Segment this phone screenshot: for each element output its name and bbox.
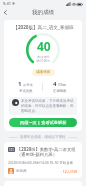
staticText: 成绩优良 xyxy=(36,70,51,75)
button[interactable]: 返回 xyxy=(0,7,11,18)
staticText: 40 xyxy=(37,38,51,54)
staticText: · 12人已报 xyxy=(61,169,78,174)
staticText: 再做一次 | 查看试卷解析 xyxy=(20,120,67,126)
staticText: 本次考试已结束，下方是本次考试的试卷，你可以点击查看解析，巩固知识点。 xyxy=(21,99,74,113)
staticText: /50题 xyxy=(58,83,67,87)
staticText: 【2020版】奥数学-高二语文组（通用版-新科几班） xyxy=(17,146,78,158)
staticText: 本次得分 xyxy=(37,55,50,59)
staticText: 9:41 xyxy=(3,1,11,6)
staticText: 查看历史成绩，继续以下课程 xyxy=(20,135,66,139)
staticText: 2月20日04时40-06时14:00 55-50 开始直播 xyxy=(8,160,73,165)
staticText: 满分100分 xyxy=(36,59,51,63)
staticText: 【2020版】高二_语文_寒假班 xyxy=(13,24,74,30)
staticText: 张老师 xyxy=(16,169,27,173)
staticText: 考试次数 xyxy=(19,89,33,93)
staticText: 我的成绩 xyxy=(32,9,54,16)
staticText: 次考试 xyxy=(23,83,33,87)
staticText: 1 xyxy=(18,80,22,88)
staticText: 4 xyxy=(53,80,57,88)
button[interactable]: 【2020版】奥数学-高二语文组（通用版-新科几班） xyxy=(4,142,82,178)
button[interactable]: 再做一次 | 查看试卷解析 xyxy=(9,118,77,127)
staticText: 正确题数 xyxy=(53,89,67,93)
